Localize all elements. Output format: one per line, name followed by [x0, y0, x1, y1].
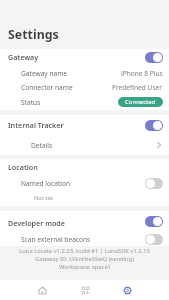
button[interactable]: Scan external beacons [0, 232, 169, 246]
staticText: Gateway [8, 52, 39, 62]
staticText: Gateway name [21, 69, 68, 78]
staticText: Connector name [21, 83, 73, 92]
button[interactable]: Toggle on [145, 120, 163, 131]
button[interactable]: Named location [0, 176, 169, 206]
staticText: Named location [21, 179, 71, 188]
staticText: Settings [8, 26, 59, 43]
button[interactable]: Toggle off [145, 234, 163, 245]
button[interactable]: Internal Tracker [0, 115, 169, 135]
staticText: Internal Tracker [8, 120, 64, 130]
button[interactable]: Connector name [0, 80, 169, 94]
staticText: Luna Locate v1.2.23, build #1 | LunaSDK … [19, 247, 150, 255]
staticText: Connected [125, 98, 156, 106]
staticText: Gateway ID: LFknHteSSwQ (sending) [35, 255, 134, 263]
button[interactable]: Home [21, 280, 64, 300]
staticText: Scan external beacons [21, 235, 91, 244]
staticText: Predefined User [112, 83, 163, 92]
button[interactable]: Developer mode [0, 211, 169, 232]
button[interactable]: Details [0, 135, 169, 155]
button[interactable]: Scan [64, 280, 106, 300]
staticText: Not set [34, 194, 53, 202]
button[interactable]: Gateway [0, 49, 169, 66]
staticText: Location [8, 162, 38, 172]
button[interactable]: Toggle off [145, 178, 163, 189]
staticText: Developer mode [8, 218, 65, 228]
staticText: Details [31, 141, 53, 150]
button[interactable]: Settings [106, 280, 148, 300]
button[interactable]: Status [0, 94, 169, 110]
staticText: iPhone 8 Plus [121, 69, 163, 78]
staticText: Status [21, 98, 41, 107]
staticText: Workspace: space1 [59, 263, 111, 271]
button[interactable]: Toggle on [145, 52, 163, 63]
button[interactable]: Gateway name [0, 66, 169, 80]
button[interactable]: Location [0, 159, 169, 176]
button[interactable]: Toggle on [145, 216, 163, 227]
